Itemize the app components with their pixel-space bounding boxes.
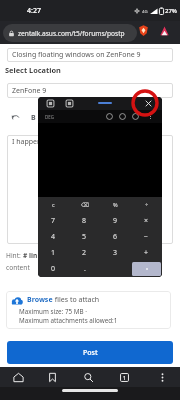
- staticText: Maximum attachments allowed:1: [19, 316, 118, 325]
- staticText: DEG: [45, 114, 54, 120]
- button[interactable]: Tabs: [117, 367, 131, 387]
- button[interactable]: Undo: [11, 113, 20, 122]
- button[interactable]: 1: [39, 246, 68, 260]
- button[interactable]: Browse: [6, 291, 171, 329]
- staticText: ⌫: [81, 202, 89, 209]
- staticText: 4: [51, 232, 56, 242]
- staticText: 8: [82, 216, 87, 226]
- button[interactable]: B: [31, 113, 36, 123]
- staticText: Select Location: [5, 65, 61, 75]
- staticText: # lin: [23, 251, 38, 260]
- staticText: Maximum size: 75 MB ·: [19, 307, 87, 316]
- button[interactable]: −: [132, 230, 161, 244]
- button[interactable]: Home: [11, 367, 25, 387]
- button[interactable]: ⌫: [70, 198, 99, 212]
- staticText: content: [6, 263, 30, 272]
- staticText: %: [113, 201, 118, 209]
- button[interactable]: 6: [101, 230, 130, 244]
- button[interactable]: Brave Shields: [136, 23, 151, 38]
- button[interactable]: Post: [7, 341, 173, 364]
- staticText: 1: [123, 374, 126, 381]
- staticText: Closing floating windows on ZenFone 9: [12, 50, 141, 60]
- button[interactable]: 4: [39, 230, 68, 244]
- button[interactable]: 7: [39, 214, 68, 228]
- button[interactable]: Float keyboard: [65, 99, 74, 108]
- staticText: I happen: [12, 137, 42, 147]
- button[interactable]: Convert: [119, 113, 126, 120]
- button[interactable]: Mode: [132, 113, 139, 120]
- button[interactable]: Profile: [157, 23, 172, 38]
- button[interactable]: 5: [70, 230, 99, 244]
- staticText: 3: [113, 248, 118, 258]
- staticText: ZenFone 9: [12, 86, 47, 96]
- staticText: files to attach: [53, 295, 100, 305]
- button[interactable]: I happen: [7, 135, 173, 244]
- staticText: 6: [113, 232, 118, 242]
- button[interactable]: 2: [70, 246, 99, 260]
- button[interactable]: ZenFone 9: [7, 83, 173, 98]
- staticText: Hint:: [6, 251, 23, 260]
- button[interactable]: ÷: [132, 198, 161, 212]
- staticText: 5: [82, 232, 87, 242]
- staticText: 4:27: [27, 6, 41, 16]
- button[interactable]: .: [70, 262, 99, 276]
- button[interactable]: [132, 262, 161, 276]
- button[interactable]: zentalk.asus.com/t5/forums/postp: [3, 24, 137, 42]
- staticText: ×: [144, 216, 149, 226]
- staticText: .: [84, 264, 86, 274]
- staticText: 2: [82, 248, 87, 258]
- button[interactable]: 8: [70, 214, 99, 228]
- button[interactable]: Resize keyboard: [46, 99, 55, 108]
- staticText: Post: [83, 348, 98, 358]
- staticText: 7: [51, 216, 56, 226]
- staticText: 4G: [142, 8, 148, 14]
- button[interactable]: Search: [81, 367, 95, 387]
- staticText: ÷: [145, 201, 149, 209]
- staticText: Browse: [27, 295, 53, 305]
- staticText: −: [144, 232, 149, 242]
- button[interactable]: Closing floating windows on ZenFone 9: [7, 48, 173, 62]
- staticText: c: [52, 201, 55, 209]
- button[interactable]: %: [101, 198, 130, 212]
- staticText: 27%: [165, 7, 177, 15]
- button[interactable]: 3: [101, 246, 130, 260]
- button[interactable]: More: [147, 113, 154, 120]
- staticText: zentalk.asus.com/t5/forums/postp: [18, 29, 125, 38]
- button[interactable]: ×: [132, 214, 161, 228]
- button[interactable]: 0: [39, 262, 68, 276]
- button[interactable]: Close keyboard: [144, 99, 153, 108]
- button[interactable]: 9: [101, 214, 130, 228]
- button[interactable]: +: [132, 246, 161, 260]
- staticText: 0: [51, 264, 56, 274]
- button[interactable]: History: [106, 113, 113, 120]
- staticText: +: [144, 248, 149, 258]
- button[interactable]: More options: [155, 367, 169, 387]
- button[interactable]: c: [39, 198, 68, 212]
- button[interactable]: Bookmarks: [45, 367, 59, 387]
- staticText: 1: [51, 248, 56, 258]
- staticText: 9: [113, 216, 118, 226]
